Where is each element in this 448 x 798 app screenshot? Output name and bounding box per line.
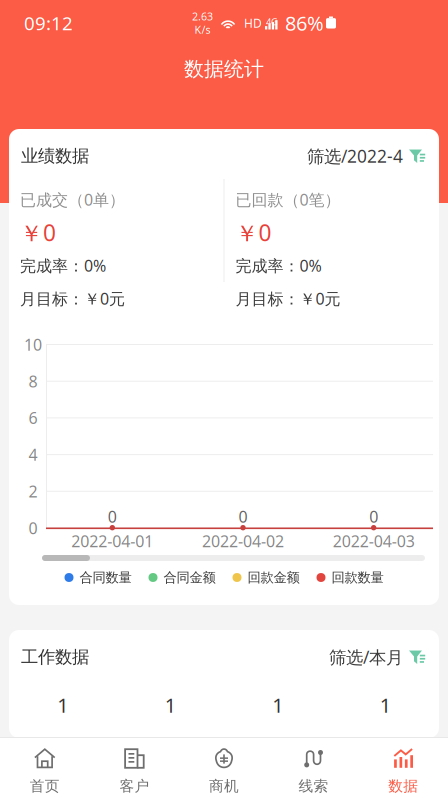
staticText: 10 [24,334,42,355]
staticText: 线索 [299,777,329,795]
staticText: 合同金额 [163,569,215,586]
staticText: 2022-04-01 [71,530,153,552]
staticText: 1 [57,692,68,718]
staticText: 2.63 [192,9,213,23]
staticText: 1 [380,692,391,718]
staticText: 月目标：￥0元 [235,288,340,309]
staticText: 数据统计 [184,57,264,81]
staticText: 6 [28,407,37,428]
staticText: 筛选/本月 [329,645,403,668]
button[interactable]: 线索 [269,738,358,798]
staticText: 客户 [119,777,149,795]
staticText: 首页 [30,777,60,795]
staticText: 已回款（0笔） [235,189,340,210]
staticText: 回款数量 [331,569,383,586]
staticText: 4G [266,15,278,28]
staticText: 回款金额 [247,569,299,586]
staticText: 商机 [209,777,239,795]
staticText: 8 [28,371,37,392]
staticText: 1 [165,692,176,718]
staticText: 0 [238,506,247,527]
staticText: 完成率：0% [235,255,321,276]
staticText: 0 [108,506,117,527]
button[interactable]: 商机 [179,738,269,798]
button[interactable]: 数据 [358,738,448,798]
staticText: 数据 [388,777,418,795]
button[interactable]: 筛选/本月 [329,645,427,668]
staticText: 86% [285,10,324,36]
staticText: ￥0 [235,217,271,248]
staticText: 完成率：0% [20,255,106,276]
button[interactable]: 筛选/2022-4 [307,144,427,167]
staticText: 筛选/2022-4 [307,144,403,167]
staticText: HD [244,15,262,31]
staticText: 09:12 [24,11,73,35]
staticText: 合同数量 [79,569,131,586]
staticText: K/s [194,22,210,37]
staticText: 1 [272,692,283,718]
staticText: 0 [28,517,37,539]
staticText: 月目标：￥0元 [20,288,125,309]
staticText: 2 [28,481,37,502]
staticText: ￥0 [20,217,56,248]
staticText: 2022-04-03 [333,530,415,552]
staticText: 2022-04-02 [202,530,284,552]
button[interactable]: 首页 [0,738,90,798]
staticText: 工作数据 [21,646,89,668]
button[interactable]: 客户 [90,738,179,798]
staticText: 0 [369,506,378,527]
staticText: 已成交（0单） [20,189,125,210]
staticText: 4 [28,444,37,465]
staticText: 业绩数据 [21,145,89,167]
